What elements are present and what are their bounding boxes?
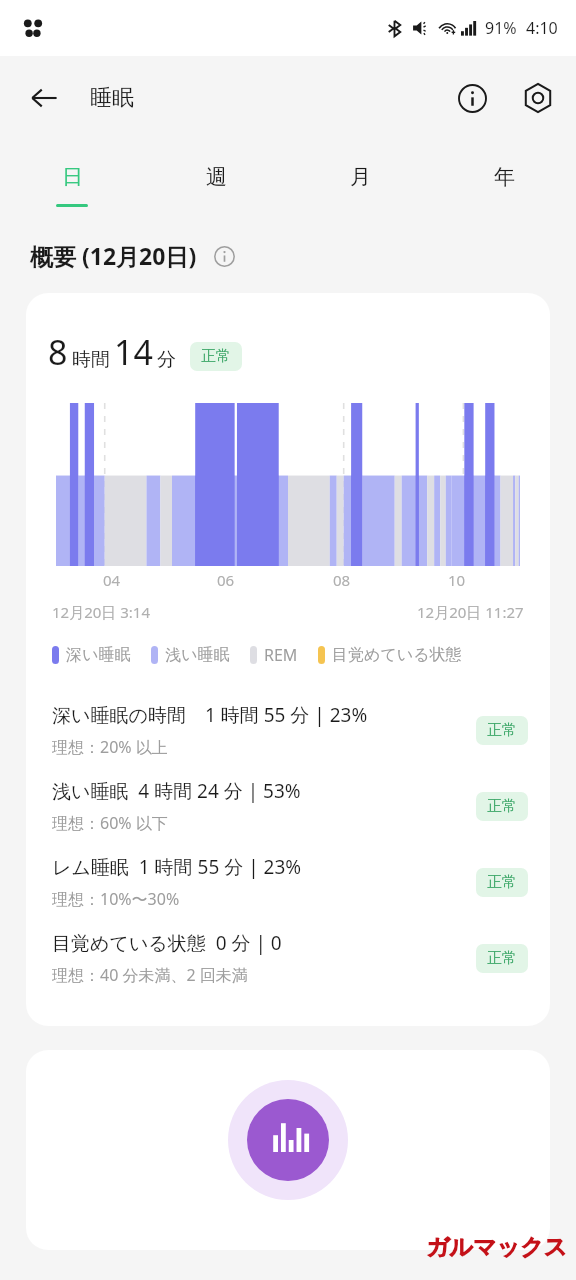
button[interactable]: 年 [432, 140, 576, 224]
staticText: 日 [62, 164, 83, 190]
staticText: 年 [494, 164, 515, 190]
staticText: REM [264, 644, 298, 666]
staticText: 週 [206, 164, 227, 190]
button[interactable]: 日 [0, 140, 144, 224]
staticText: 91% [485, 17, 517, 39]
staticText: 08 [333, 570, 351, 590]
staticText: 8 [48, 329, 68, 375]
staticText: 理想：20% 以上 [52, 736, 168, 758]
staticText: 月 [350, 164, 371, 190]
button[interactable]: Information [448, 74, 496, 122]
staticText: 分 [157, 348, 176, 372]
staticText: 目覚めている状態 [332, 645, 462, 665]
button[interactable]: Summary info [209, 241, 239, 271]
staticText: 正常 [201, 347, 231, 366]
button[interactable]: Back [20, 74, 68, 122]
staticText: 12月20日 11:27 [417, 602, 524, 622]
button[interactable]: 目覚めている状態 0 分 | 0 [26, 920, 550, 996]
staticText: 理想：40 分未満、2 回未満 [52, 964, 248, 986]
button[interactable]: 月 [288, 140, 432, 224]
staticText: 浅い睡眠 4 時間 24 分 | 53% [52, 778, 301, 804]
button[interactable]: レム睡眠 1 時間 55 分 | 23% [26, 844, 550, 920]
button[interactable]: 浅い睡眠 4 時間 24 分 | 53% [26, 768, 550, 844]
staticText: 10 [448, 570, 466, 590]
staticText: 正常 [487, 797, 517, 816]
staticText: 深い睡眠 [66, 645, 131, 665]
staticText: 4:10 [526, 17, 558, 39]
staticText: 06 [217, 570, 235, 590]
staticText: 目覚めている状態 0 分 | 0 [52, 930, 282, 956]
staticText: 深い睡眠の時間 1 時間 55 分 | 23% [52, 702, 368, 728]
staticText: レム睡眠 1 時間 55 分 | 23% [52, 854, 302, 880]
button[interactable]: Settings [514, 74, 562, 122]
staticText: 理想：10%〜30% [52, 888, 180, 910]
staticText: 正常 [487, 949, 517, 968]
staticText: 浅い睡眠 [165, 645, 230, 665]
staticText: 14 [114, 329, 153, 375]
staticText: 理想：60% 以下 [52, 812, 168, 834]
staticText: 概要 (12月20日) [30, 240, 197, 271]
staticText: 12月20日 3:14 [52, 602, 150, 622]
staticText: ガルマックス [426, 1233, 568, 1262]
staticText: 正常 [487, 721, 517, 740]
staticText: 04 [103, 570, 121, 590]
button[interactable]: 深い睡眠の時間 1 時間 55 分 | 23% [26, 692, 550, 768]
staticText: 睡眠 [90, 84, 134, 112]
button[interactable]: 週 [144, 140, 288, 224]
staticText: 時間 [72, 348, 110, 372]
staticText: 正常 [487, 873, 517, 892]
